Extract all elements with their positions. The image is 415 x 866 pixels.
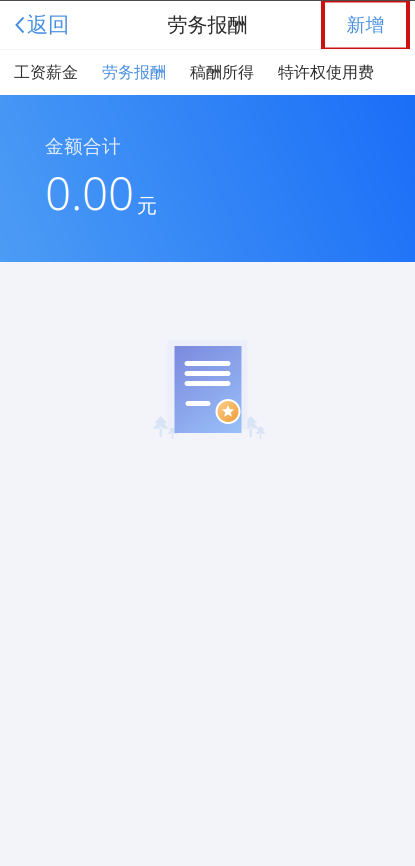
staticText: 工资薪金 (14, 63, 78, 82)
button[interactable]: 返回 (0, 0, 79, 50)
button[interactable]: 劳务报酬 (102, 50, 166, 94)
button[interactable]: 特许权使用费 (278, 50, 374, 94)
staticText: 元 (137, 194, 157, 218)
button[interactable]: 新增 (323, 0, 415, 49)
staticText: 返回 (27, 12, 69, 38)
button[interactable]: 稿酬所得 (190, 50, 254, 94)
staticText: 特许权使用费 (278, 63, 374, 82)
staticText: 0.00 (45, 163, 134, 223)
staticText: 金额合计 (45, 135, 121, 158)
staticText: 劳务报酬 (102, 63, 166, 82)
staticText: 稿酬所得 (190, 63, 254, 82)
button[interactable]: 工资薪金 (14, 50, 78, 94)
staticText: 新增 (346, 13, 384, 36)
staticText: 劳务报酬 (167, 13, 247, 37)
